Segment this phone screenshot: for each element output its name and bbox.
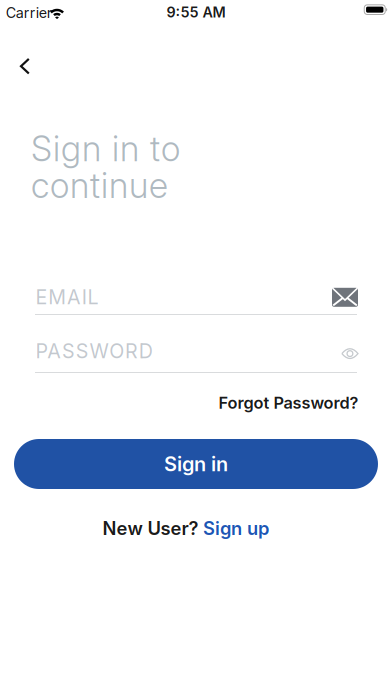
button[interactable]: Show password [335,342,365,365]
staticText: PASSWORD [36,339,153,363]
staticText: EMAIL [35,285,98,309]
staticText: 9:55 AM [166,3,225,21]
button[interactable]: Back [0,50,44,83]
staticText: Sign in [164,452,228,476]
staticText: Sign up [203,517,269,539]
staticText: New User? [102,517,198,539]
staticText: Forgot Password? [218,393,358,413]
button[interactable]: Forgot Password? [218,393,358,413]
button[interactable]: Sign up [203,517,269,539]
staticText: continue [31,164,168,206]
staticText: Sign in to [31,128,180,169]
button[interactable]: Sign in [14,439,378,489]
staticText: Carrier [6,4,52,21]
